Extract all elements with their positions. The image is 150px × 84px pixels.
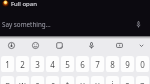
staticText: 2 [20,59,25,70]
button[interactable]: Voice message [133,19,144,29]
button[interactable]: t [61,76,74,84]
button[interactable]: 4 [46,56,59,72]
staticText: Full opan [11,0,37,7]
button[interactable]: Translate [114,40,125,51]
button[interactable]: 0 [136,56,149,72]
button[interactable]: Collapse keyboard [136,40,147,51]
button[interactable]: Assistant [6,40,17,51]
button[interactable]: 8 [106,56,119,72]
staticText: Say something... [2,20,133,29]
button[interactable]: Emoji [30,40,41,51]
button[interactable]: 3 [31,56,44,72]
button[interactable]: w [16,76,29,84]
button[interactable]: Voice input [86,40,97,51]
button[interactable]: 6 [76,56,89,72]
staticText: q [5,79,10,84]
staticText: 4 [50,59,55,70]
staticText: u [95,79,100,84]
button[interactable]: 2 [16,56,29,72]
button[interactable]: e [31,76,44,84]
staticText: t [66,79,69,84]
staticText: r [51,79,55,84]
staticText: e [35,79,40,84]
staticText: y [80,79,85,84]
button[interactable]: u [91,76,104,84]
button[interactable]: p [136,76,149,84]
button[interactable]: y [76,76,89,84]
button[interactable]: 9 [121,56,134,72]
button[interactable]: r [46,76,59,84]
staticText: 8 [110,59,115,70]
button[interactable]: o [121,76,134,84]
staticText: i [111,79,114,84]
staticText: 1 [5,59,10,70]
button[interactable]: i [106,76,119,84]
button[interactable]: 7 [91,56,104,72]
button[interactable]: 1 [1,56,14,72]
button[interactable]: Stickers [54,40,65,51]
staticText: 3 [35,59,40,70]
staticText: 9 [125,59,130,70]
staticText: 7 [95,59,100,70]
staticText: 0 [140,59,145,70]
button[interactable]: 5 [61,56,74,72]
staticText: o [125,79,130,84]
staticText: w [19,79,26,84]
staticText: 5 [65,59,70,70]
staticText: p [140,79,145,84]
button[interactable]: q [1,76,14,84]
staticText: 6 [80,59,85,70]
